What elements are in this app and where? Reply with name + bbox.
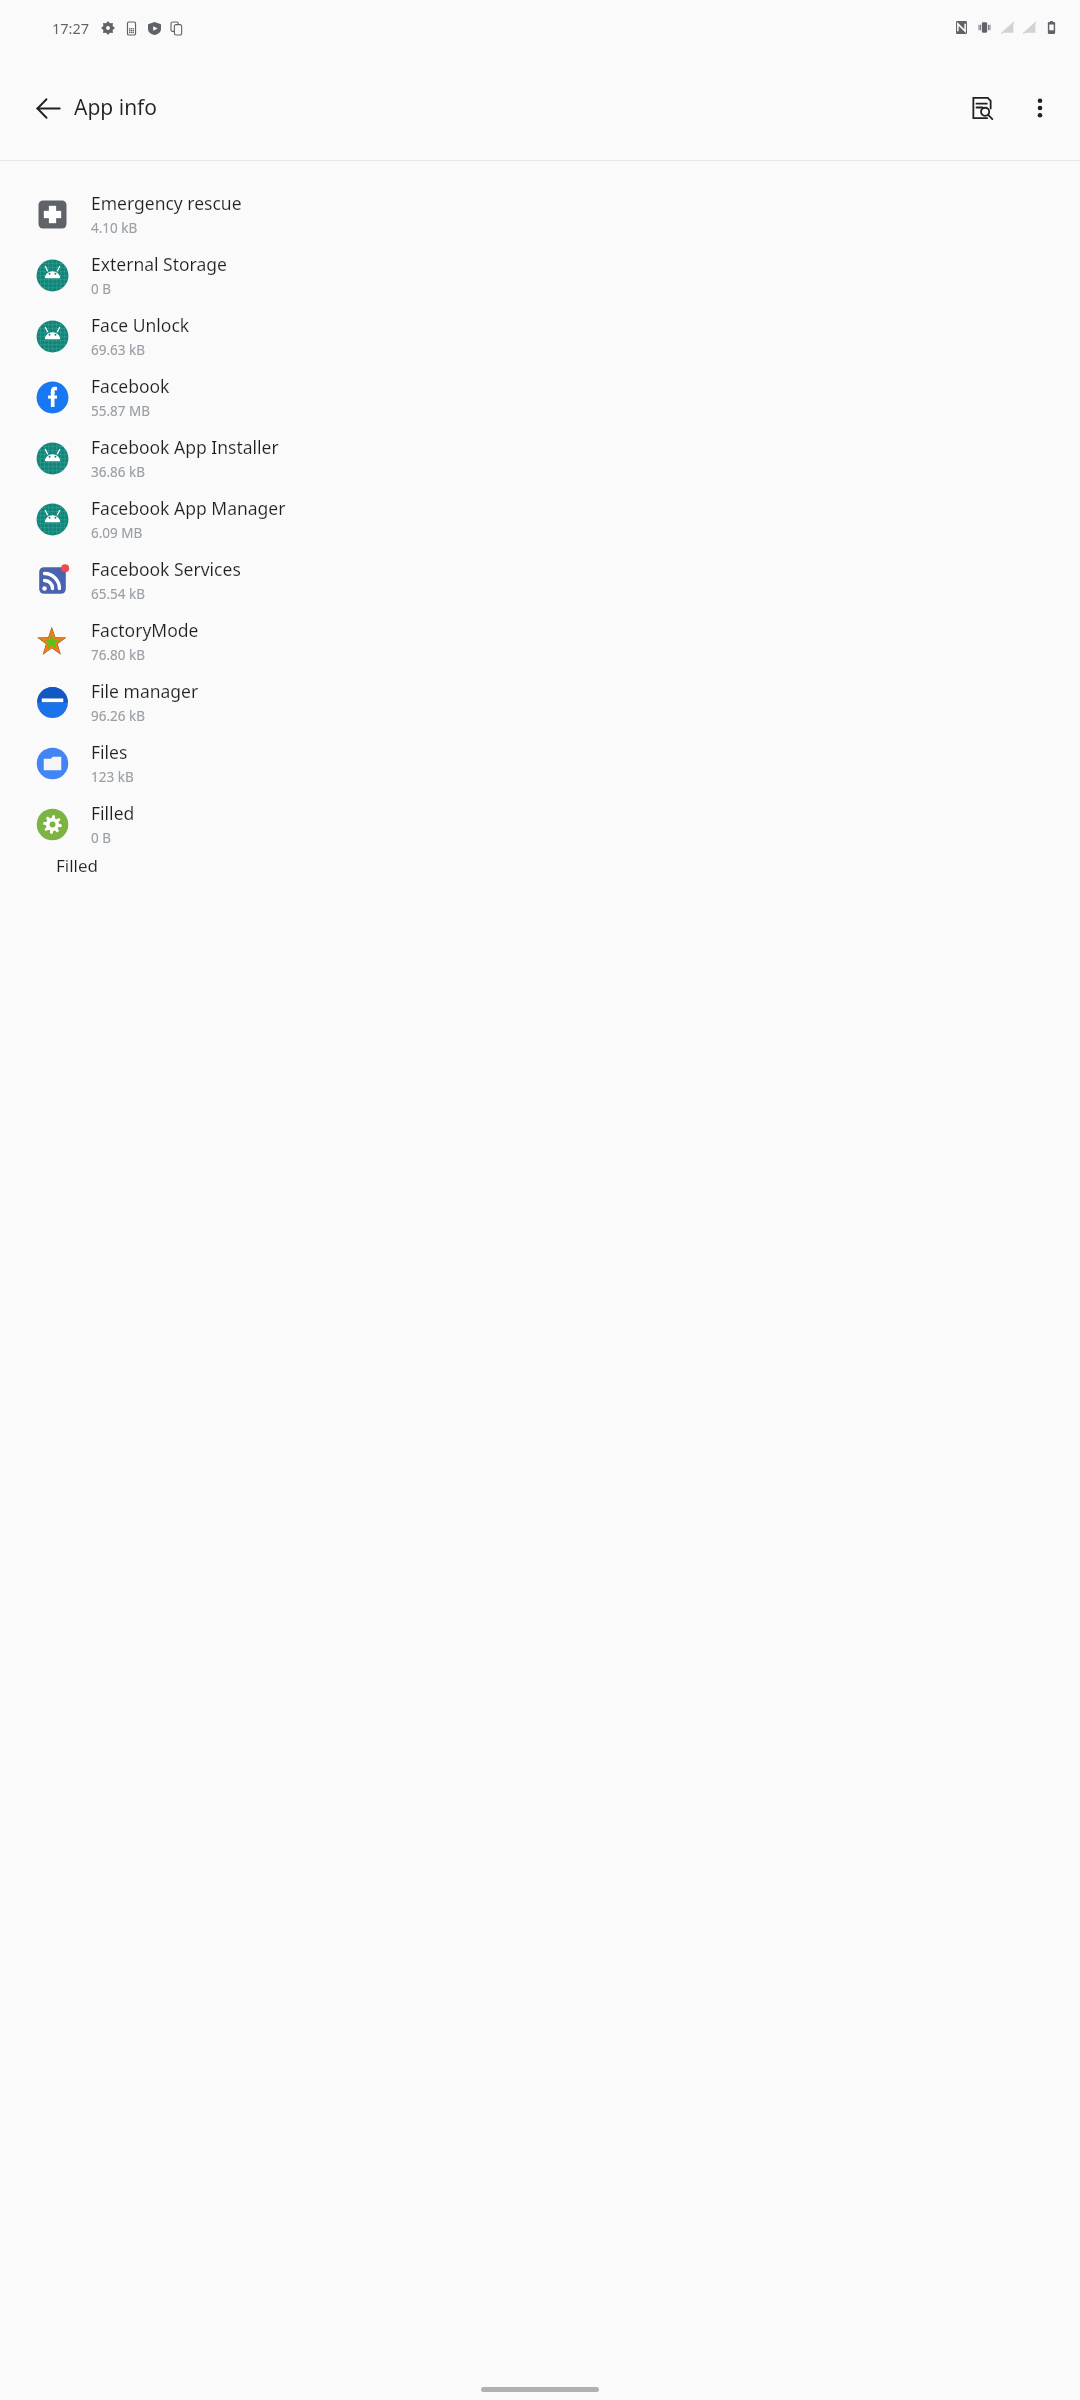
staticText: Files: [91, 740, 128, 764]
staticText: 76.80 kB: [91, 646, 145, 664]
staticText: 4.10 kB: [91, 219, 138, 237]
staticText: 17:27: [52, 18, 90, 38]
button[interactable]: More options: [1014, 82, 1066, 134]
staticText: Facebook App Manager: [91, 496, 286, 520]
staticText: 36.86 kB: [91, 463, 145, 481]
staticText: External Storage: [91, 252, 227, 276]
button[interactable]: Back: [22, 82, 74, 134]
staticText: 123 kB: [91, 768, 134, 786]
staticText: 55.87 MB: [91, 402, 151, 420]
staticText: 65.54 kB: [91, 585, 145, 603]
staticText: Filled: [91, 801, 135, 825]
button[interactable]: Face Unlock: [0, 305, 1080, 366]
staticText: 69.63 kB: [91, 341, 145, 359]
staticText: 6.09 MB: [91, 524, 143, 542]
button[interactable]: External Storage: [0, 244, 1080, 305]
button[interactable]: Facebook: [0, 366, 1080, 427]
staticText: Filled: [56, 854, 99, 874]
button[interactable]: Facebook App Manager: [0, 488, 1080, 549]
button[interactable]: Search in list: [956, 82, 1008, 134]
staticText: 0 B: [91, 829, 112, 847]
staticText: 0 B: [91, 280, 112, 298]
staticText: Emergency rescue: [91, 191, 242, 215]
staticText: 96.26 kB: [91, 707, 145, 725]
button[interactable]: Files: [0, 732, 1080, 793]
button[interactable]: Facebook App Installer: [0, 427, 1080, 488]
staticText: Facebook App Installer: [91, 435, 279, 459]
staticText: Facebook Services: [91, 557, 241, 581]
staticText: Face Unlock: [91, 313, 190, 337]
staticText: Facebook: [91, 374, 170, 398]
button[interactable]: Emergency rescue: [0, 183, 1080, 244]
staticText: App info: [74, 93, 158, 122]
staticText: FactoryMode: [91, 618, 199, 642]
button[interactable]: File manager: [0, 671, 1080, 732]
button[interactable]: Facebook Services: [0, 549, 1080, 610]
button[interactable]: Filled: [0, 793, 1080, 854]
staticText: File manager: [91, 679, 199, 703]
button[interactable]: FactoryMode: [0, 610, 1080, 671]
